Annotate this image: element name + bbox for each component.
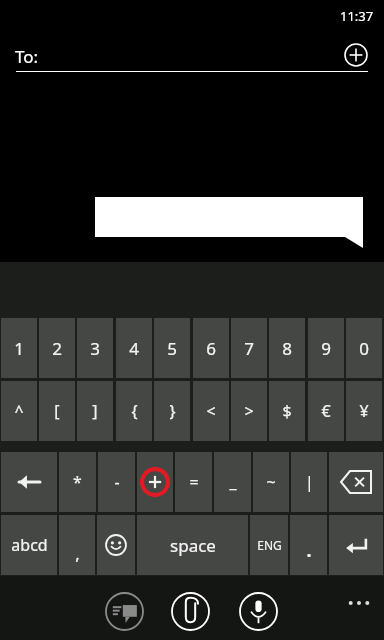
- staticText: ,: [75, 542, 80, 565]
- staticText: .: [306, 538, 312, 563]
- staticText: }: [169, 400, 176, 422]
- button[interactable]: 3: [77, 318, 113, 378]
- staticText: 11:37: [340, 7, 374, 25]
- staticText: $: [282, 400, 292, 422]
- staticText: =: [189, 471, 199, 493]
- staticText: 6: [206, 337, 216, 360]
- button[interactable]: 1: [1, 318, 37, 378]
- staticText: 7: [244, 337, 254, 360]
- button[interactable]: *: [59, 452, 96, 512]
- button[interactable]: {: [116, 381, 152, 441]
- staticText: 1: [14, 337, 24, 360]
- button[interactable]: [: [39, 381, 75, 441]
- staticText: ]: [92, 400, 98, 422]
- button[interactable]: Messaging: [105, 592, 144, 631]
- staticText: 4: [129, 337, 139, 360]
- button[interactable]: Previous page: [1, 452, 57, 512]
- staticText: 9: [321, 337, 331, 360]
- staticText: 3: [90, 337, 100, 360]
- staticText: 8: [282, 337, 292, 360]
- button[interactable]: 0: [346, 318, 382, 378]
- staticText: <: [206, 400, 216, 422]
- staticText: ^: [14, 400, 24, 422]
- button[interactable]: Plus: [137, 452, 173, 512]
- button[interactable]: ~: [253, 452, 289, 512]
- button[interactable]: €: [308, 381, 344, 441]
- button[interactable]: |: [291, 452, 327, 512]
- staticText: |: [305, 471, 314, 493]
- button[interactable]: ]: [77, 381, 113, 441]
- staticText: 0: [359, 337, 369, 360]
- staticText: To:: [15, 45, 39, 68]
- button[interactable]: ENG: [250, 515, 288, 575]
- button[interactable]: >: [231, 381, 267, 441]
- staticText: abcd: [11, 534, 48, 556]
- button[interactable]: =: [175, 452, 212, 512]
- button[interactable]: 8: [269, 318, 305, 378]
- button[interactable]: Add recipient: [338, 37, 374, 73]
- button[interactable]: Voice input: [239, 592, 278, 631]
- button[interactable]: }: [154, 381, 190, 441]
- button[interactable]: Attach: [171, 592, 210, 631]
- staticText: {: [131, 400, 138, 422]
- button[interactable]: Comma: [59, 515, 95, 575]
- button[interactable]: _: [214, 452, 251, 512]
- button[interactable]: 2: [39, 318, 75, 378]
- button[interactable]: 4: [116, 318, 152, 378]
- staticText: ENG: [257, 537, 282, 553]
- staticText: €: [321, 400, 331, 422]
- staticText: ¥: [359, 400, 369, 422]
- button[interactable]: Period: [290, 515, 327, 575]
- staticText: >: [244, 400, 254, 422]
- staticText: _: [229, 471, 237, 493]
- button[interactable]: ^: [1, 381, 37, 441]
- staticText: ~: [266, 471, 276, 493]
- staticText: -: [114, 471, 120, 493]
- staticText: space: [170, 534, 216, 557]
- button[interactable]: ¥: [346, 381, 382, 441]
- staticText: *: [73, 471, 82, 493]
- button[interactable]: <: [193, 381, 229, 441]
- button[interactable]: [95, 197, 363, 248]
- button[interactable]: 7: [231, 318, 267, 378]
- button[interactable]: $: [269, 381, 305, 441]
- button[interactable]: More options: [338, 585, 380, 621]
- button[interactable]: 5: [154, 318, 190, 378]
- button[interactable]: Enter: [329, 515, 383, 575]
- button[interactable]: Backspace: [329, 452, 383, 512]
- button[interactable]: 9: [308, 318, 344, 378]
- button[interactable]: -: [98, 452, 135, 512]
- button[interactable]: 6: [193, 318, 229, 378]
- staticText: [: [54, 400, 60, 422]
- button[interactable]: space: [137, 515, 248, 575]
- staticText: 5: [167, 337, 177, 360]
- staticText: 2: [52, 337, 62, 360]
- button[interactable]: Emoji: [97, 515, 135, 575]
- button[interactable]: abcd: [1, 515, 57, 575]
